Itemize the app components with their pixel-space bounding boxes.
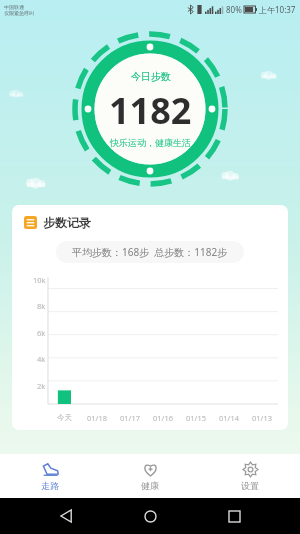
button[interactable]: Home — [133, 499, 167, 533]
staticText: 今天 — [57, 413, 72, 422]
button[interactable]: 走路 — [0, 454, 100, 498]
staticText: 仅限紧急呼叫 — [4, 10, 34, 16]
staticText: 平均步数：168步 总步数：1182步 — [72, 245, 228, 259]
staticText: 2k — [37, 381, 46, 391]
staticText: 健康 — [141, 480, 159, 491]
staticText: 8k — [37, 301, 46, 311]
button[interactable]: Recents — [217, 499, 251, 533]
staticText: 4k — [37, 354, 46, 364]
staticText: 01/15 — [186, 413, 206, 423]
staticText: 6k — [37, 328, 46, 338]
staticText: 快乐运动，健康生活 — [110, 137, 191, 148]
button[interactable]: 设置 — [200, 454, 300, 498]
staticText: 今日步数 — [131, 70, 171, 83]
staticText: 走路 — [41, 480, 59, 491]
button[interactable]: Back — [50, 499, 84, 533]
staticText: 01/18 — [87, 413, 107, 423]
button[interactable]: 健康 — [100, 454, 200, 498]
staticText: 01/16 — [153, 413, 173, 423]
staticText: 01/13 — [252, 413, 272, 423]
staticText: 10k — [33, 275, 46, 285]
staticText: 设置 — [241, 480, 259, 491]
staticText: 中国联通 — [4, 4, 24, 10]
staticText: 上午10:37 — [259, 4, 296, 15]
staticText: 步数记录 — [43, 215, 91, 230]
staticText: 1182 — [109, 86, 192, 135]
staticText: 01/14 — [219, 413, 239, 423]
staticText: 01/17 — [120, 413, 140, 423]
staticText: 80% — [226, 4, 242, 15]
